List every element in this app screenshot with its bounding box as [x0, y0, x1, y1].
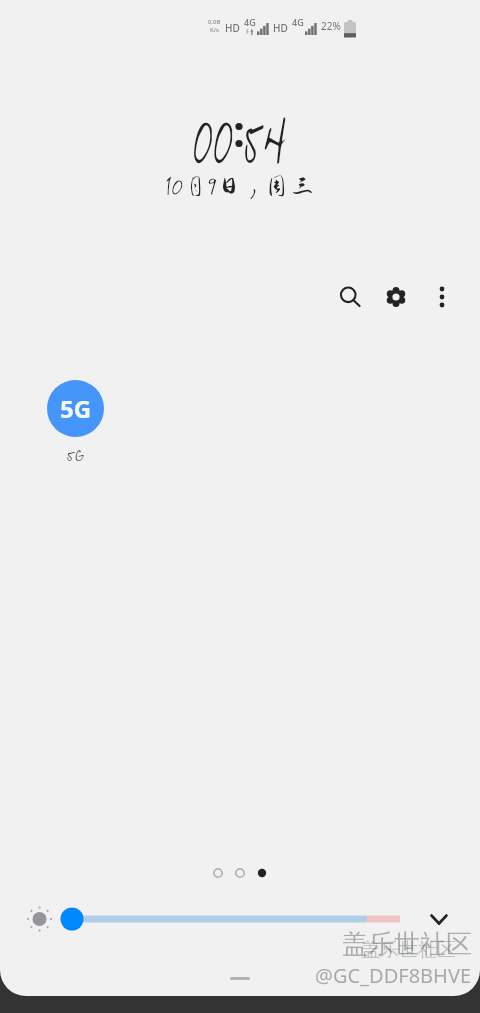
button[interactable]: 00 [173, 104, 307, 196]
staticText: 盖乐世社区 [342, 928, 472, 961]
staticText: 22% [321, 19, 341, 33]
button[interactable]: Search [332, 279, 368, 315]
staticText: 4G [292, 16, 304, 28]
staticText: 4G [244, 16, 256, 28]
staticText: 10月9日，周三 [165, 174, 315, 196]
staticText: @GC_DDF8BHVE [315, 962, 472, 989]
button[interactable]: Settings [378, 279, 414, 315]
staticText: 5G [67, 446, 84, 462]
button[interactable]: Brightness [0, 902, 420, 936]
button[interactable]: Expand [420, 902, 458, 936]
staticText: HD [225, 21, 240, 35]
staticText: 0.0B [208, 18, 221, 26]
button[interactable]: 5G [47, 380, 104, 462]
staticText: 00 [193, 104, 234, 166]
staticText: K/s [210, 26, 219, 34]
staticText: 盖乐世社区 [361, 938, 456, 962]
button[interactable]: Page indicator, page 3 of 3 [210, 866, 270, 880]
staticText: 5G [60, 392, 92, 425]
staticText: HD [273, 21, 288, 35]
button[interactable]: More options [424, 279, 460, 315]
staticText: 54 [244, 104, 286, 166]
